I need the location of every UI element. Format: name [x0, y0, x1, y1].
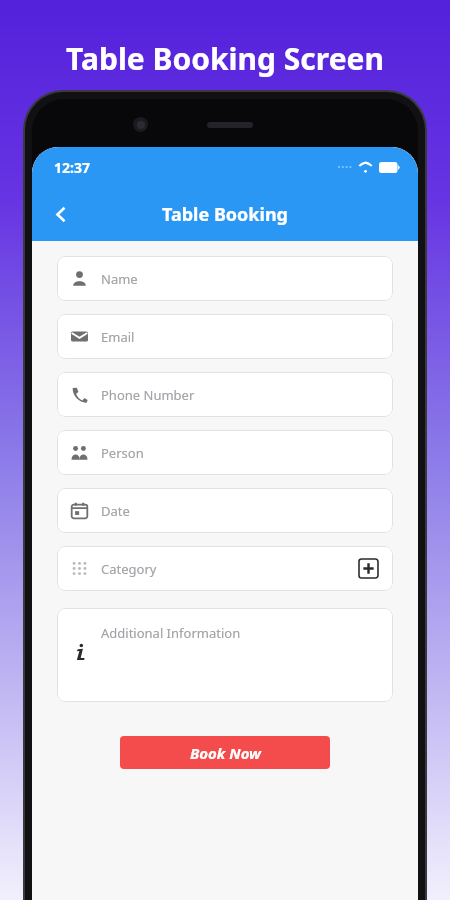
- staticText: Name: [101, 270, 138, 288]
- staticText: Table Booking: [162, 202, 288, 227]
- button[interactable]: Phone Number: [57, 372, 393, 417]
- staticText: Phone Number: [101, 386, 195, 404]
- staticText: Email: [101, 328, 135, 346]
- button[interactable]: Date: [57, 488, 393, 533]
- staticText: 12:37: [54, 158, 90, 177]
- staticText: Additional Information: [101, 624, 241, 642]
- button[interactable]: Category: [57, 546, 393, 591]
- button[interactable]: Back: [40, 193, 82, 235]
- staticText: Date: [101, 502, 130, 520]
- button[interactable]: Name: [57, 256, 393, 301]
- staticText: Person: [101, 444, 144, 462]
- button[interactable]: Email: [57, 314, 393, 359]
- button[interactable]: Add category: [358, 558, 379, 579]
- staticText: Category: [101, 560, 157, 578]
- button[interactable]: Additional Information: [57, 608, 393, 702]
- button[interactable]: Person: [57, 430, 393, 475]
- staticText: Book Now: [190, 743, 261, 763]
- button[interactable]: Book Now: [120, 736, 330, 769]
- staticText: Table Booking Screen: [0, 38, 450, 79]
